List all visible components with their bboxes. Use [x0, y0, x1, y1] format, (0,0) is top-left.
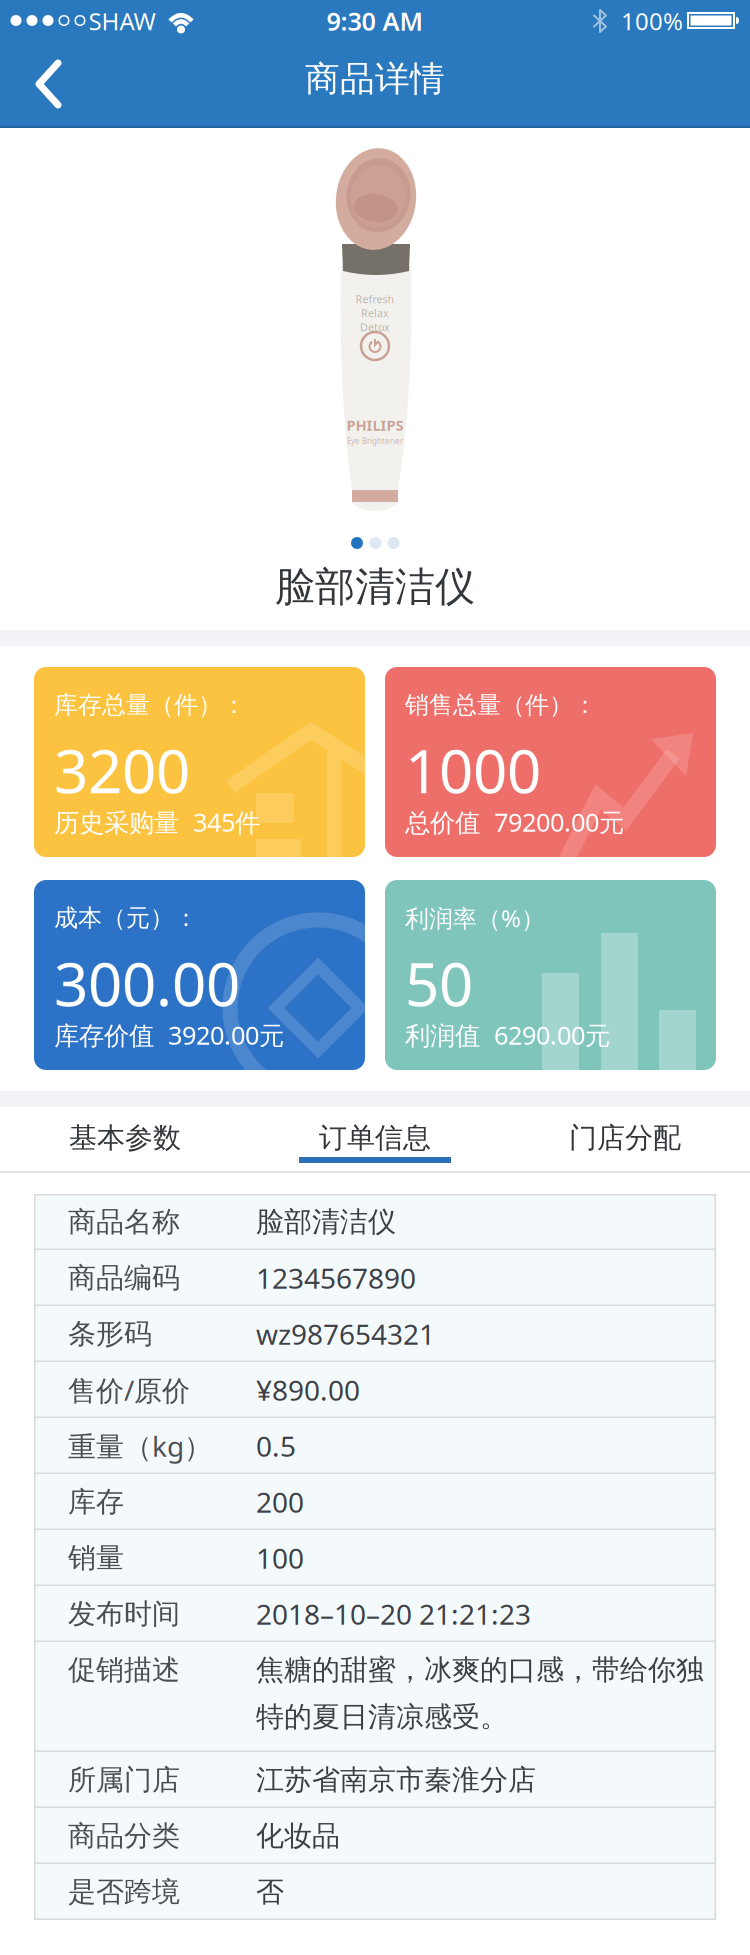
staticText: 1234567890: [256, 1259, 416, 1297]
staticText: 库存总量（件）：: [54, 690, 246, 720]
staticText: Detox: [360, 320, 390, 334]
staticText: 库存价值 3920.00元: [54, 1018, 284, 1052]
staticText: 脸部清洁仪: [275, 562, 475, 611]
staticText: 化妆品: [256, 1819, 340, 1853]
staticText: 300.00: [54, 943, 240, 1023]
staticText: 销售总量（件）：: [405, 690, 597, 720]
staticText: 特的夏日清凉感受。: [256, 1700, 508, 1734]
staticText: 商品分类: [68, 1819, 180, 1853]
staticText: 脸部清洁仪: [256, 1205, 396, 1239]
button[interactable]: 基本参数: [0, 1110, 250, 1166]
staticText: 所属门店: [68, 1763, 180, 1797]
staticText: SHAW: [88, 5, 155, 37]
staticText: PHILIPS: [346, 415, 403, 435]
staticText: 0.5: [256, 1427, 296, 1465]
staticText: 否: [256, 1875, 284, 1909]
staticText: 是否跨境: [68, 1875, 180, 1909]
staticText: 售价/原价: [68, 1371, 190, 1409]
staticText: 门店分配: [569, 1121, 681, 1155]
staticText: 9:30 AM: [326, 4, 423, 38]
staticText: 总价值 79200.00元: [405, 805, 624, 839]
staticText: 焦糖的甜蜜，冰爽的口感，带给你独: [256, 1653, 704, 1687]
staticText: 200: [256, 1483, 304, 1521]
staticText: 历史采购量 345件: [54, 805, 260, 839]
staticText: 成本（元）：: [54, 903, 198, 933]
staticText: 订单信息: [319, 1121, 431, 1155]
staticText: 重量（kg）: [68, 1427, 212, 1465]
staticText: 100: [256, 1539, 304, 1577]
staticText: 100%: [621, 5, 683, 37]
staticText: Relax: [361, 306, 389, 320]
staticText: 利润率（%）: [405, 902, 545, 934]
staticText: 江苏省南京市秦淮分店: [256, 1763, 536, 1797]
staticText: 利润值 6290.00元: [405, 1018, 610, 1052]
staticText: 商品详情: [305, 58, 445, 100]
staticText: 发布时间: [68, 1597, 180, 1631]
staticText: 2018–10–20 21:21:23: [256, 1595, 531, 1633]
button[interactable]: Back: [2, 44, 92, 124]
staticText: 50: [405, 943, 473, 1023]
button[interactable]: 门店分配: [500, 1110, 750, 1166]
staticText: 库存: [68, 1485, 124, 1519]
staticText: wz987654321: [256, 1315, 435, 1353]
staticText: 3200: [54, 730, 190, 810]
staticText: 条形码: [68, 1317, 152, 1351]
button[interactable]: 订单信息: [250, 1110, 500, 1166]
staticText: 1000: [405, 730, 541, 810]
staticText: 基本参数: [69, 1121, 181, 1155]
staticText: Refresh: [355, 292, 394, 306]
staticText: 销量: [68, 1541, 124, 1575]
staticText: 商品名称: [68, 1205, 180, 1239]
staticText: 商品编码: [68, 1261, 180, 1295]
staticText: 促销描述: [68, 1653, 180, 1687]
staticText: Eye Brightener: [347, 436, 403, 446]
staticText: ¥890.00: [256, 1371, 360, 1409]
